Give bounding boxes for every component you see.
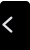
button[interactable]: Back: [0, 0, 30, 50]
